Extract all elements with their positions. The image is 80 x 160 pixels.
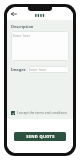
- staticText: Enter here: [29, 67, 47, 72]
- staticText: Description: [11, 24, 34, 29]
- button[interactable]: Enter here: [27, 66, 69, 73]
- button[interactable]: Enter here: [11, 31, 69, 61]
- button[interactable]: Back: [9, 9, 18, 18]
- staticText: SEND QUOTE: [26, 134, 55, 139]
- staticText: Enter here: [13, 33, 31, 38]
- button[interactable]: I accept the terms and conditions: [11, 110, 69, 116]
- staticText: I accept the terms and conditions: [17, 111, 67, 115]
- staticText: Images: [11, 67, 27, 72]
- button[interactable]: Logo: [34, 13, 46, 18]
- button[interactable]: SEND QUOTE: [14, 132, 66, 141]
